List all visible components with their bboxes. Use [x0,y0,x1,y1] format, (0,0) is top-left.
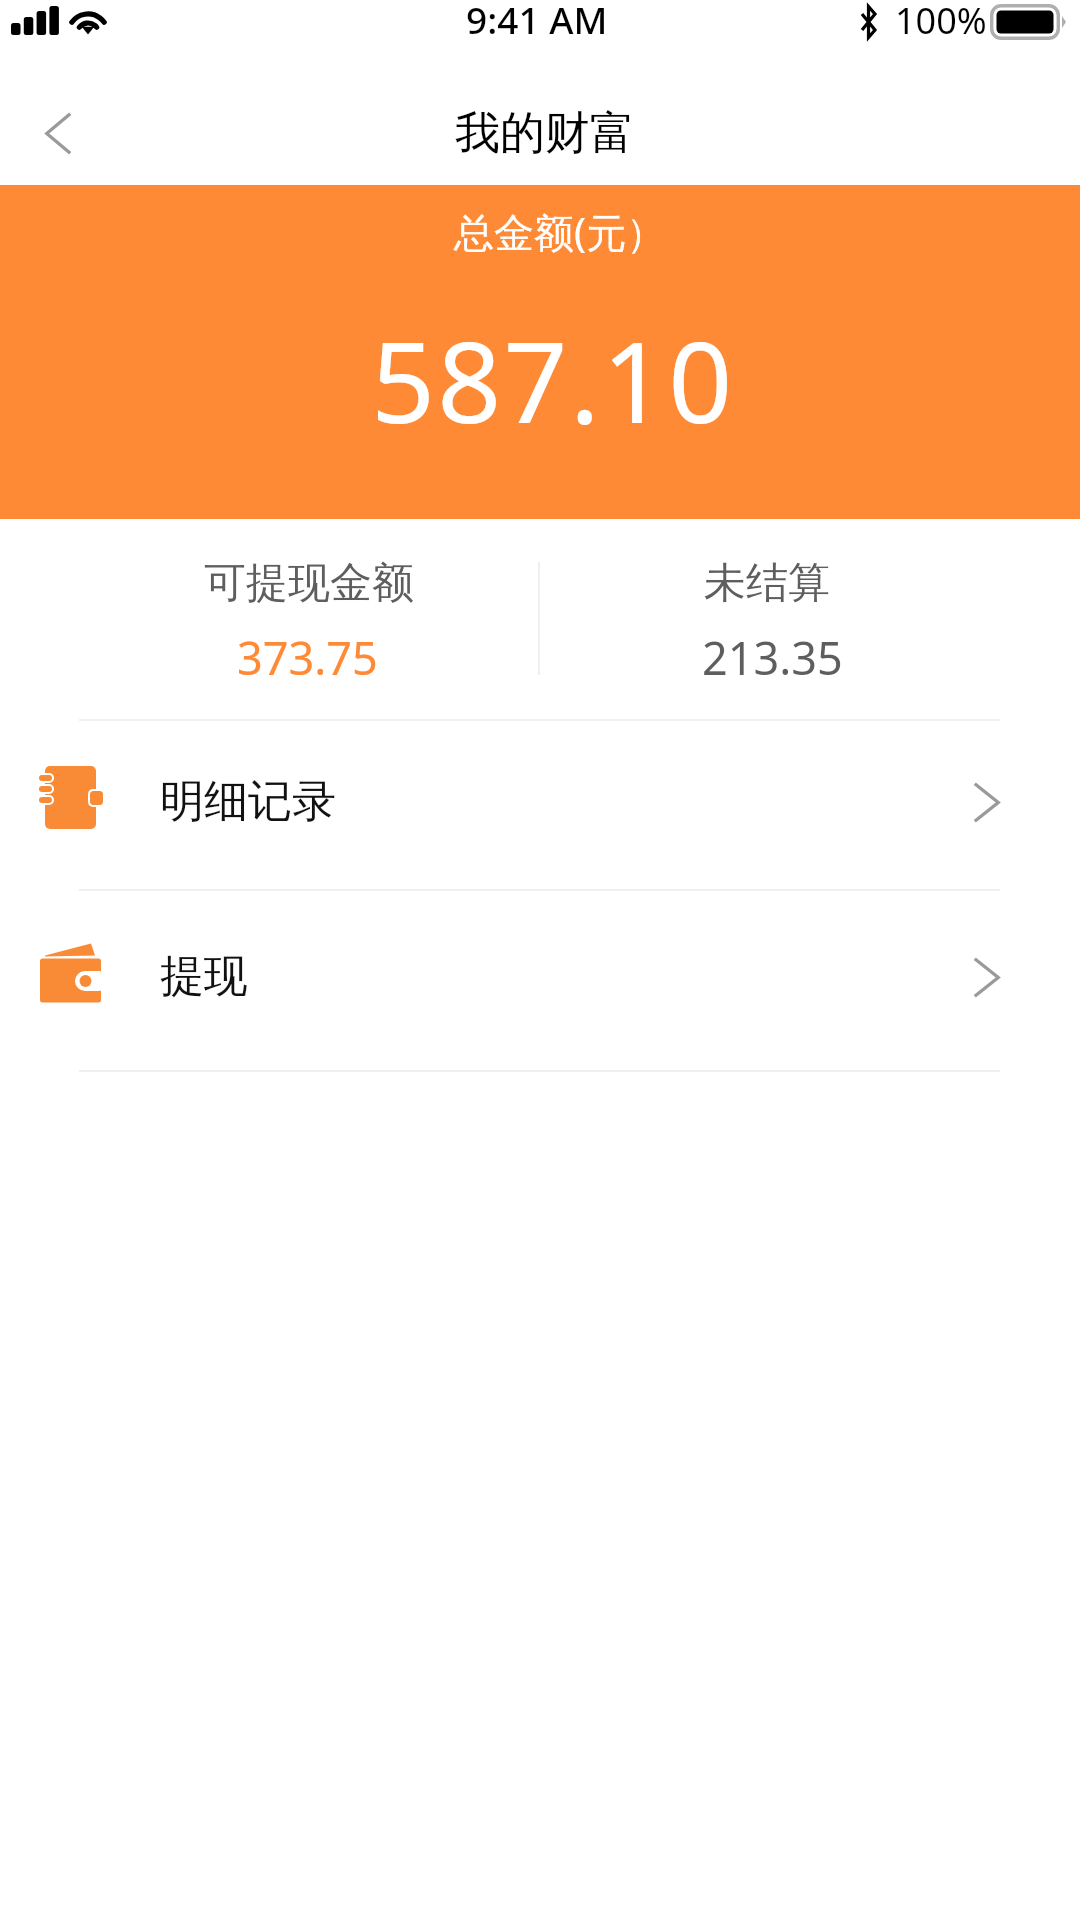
staticText: 9:41 AM [466,0,608,44]
staticText: 可提现金额 [204,557,414,610]
staticText: 总金额(元） [454,204,666,259]
staticText: 373.75 [237,627,378,688]
staticText: 213.35 [702,627,843,688]
staticText: 587.10 [371,303,735,456]
button[interactable]: Back [0,73,110,183]
staticText: 未结算 [704,557,830,610]
staticText: 提现 [160,949,248,1004]
staticText: 明细记录 [160,774,336,829]
staticText: 100% [895,0,987,45]
button[interactable]: 提现 [0,889,1080,1070]
staticText: 我的财富 [455,105,635,162]
button[interactable]: 明细记录 [0,719,1080,889]
